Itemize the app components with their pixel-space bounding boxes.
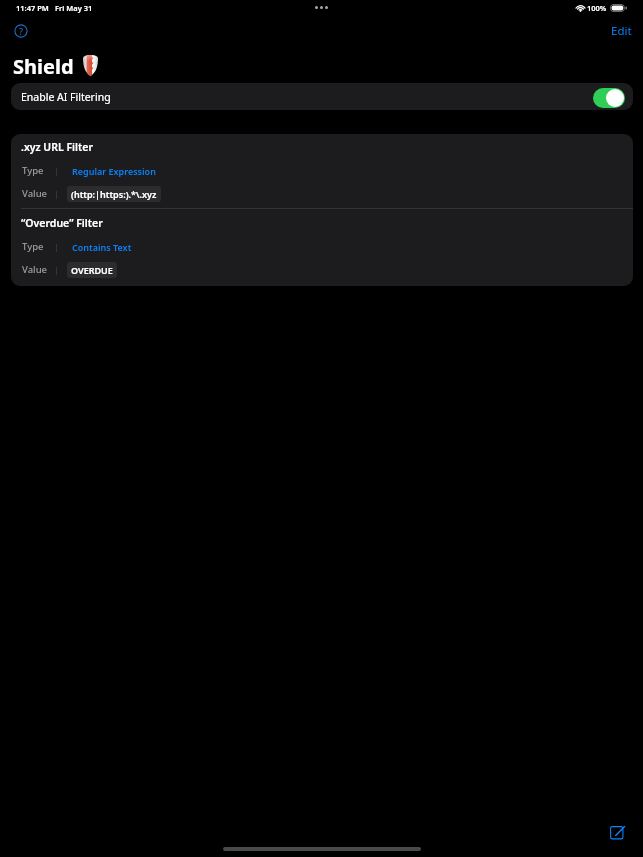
- staticText: OVERDUE: [71, 264, 113, 276]
- button[interactable]: Compose: [605, 820, 629, 844]
- button[interactable]: Edit: [604, 20, 639, 42]
- staticText: 100%: [587, 3, 607, 13]
- staticText: “Overdue” Filter: [21, 216, 103, 230]
- staticText: Contains Text: [72, 241, 132, 253]
- staticText: (http:|https:).*\.xyz: [71, 188, 157, 200]
- staticText: Type: [22, 164, 44, 177]
- staticText: 11:47 PM: [16, 3, 49, 13]
- staticText: Value: [22, 187, 48, 200]
- button[interactable]: .xyz URL Filter: [11, 134, 633, 208]
- staticText: Shield: [13, 53, 74, 80]
- staticText: Enable AI Filtering: [21, 90, 111, 104]
- button[interactable]: Enable AI Filtering: [11, 83, 633, 110]
- staticText: Type: [22, 240, 44, 253]
- staticText: Value: [22, 263, 48, 276]
- staticText: Edit: [611, 23, 632, 39]
- staticText: ?: [19, 25, 24, 37]
- staticText: .xyz URL Filter: [21, 140, 93, 154]
- button[interactable]: “Overdue” Filter: [11, 209, 633, 286]
- button[interactable]: Help: [7, 17, 35, 45]
- staticText: Regular Expression: [72, 165, 156, 177]
- staticText: Fri May 31: [55, 3, 93, 13]
